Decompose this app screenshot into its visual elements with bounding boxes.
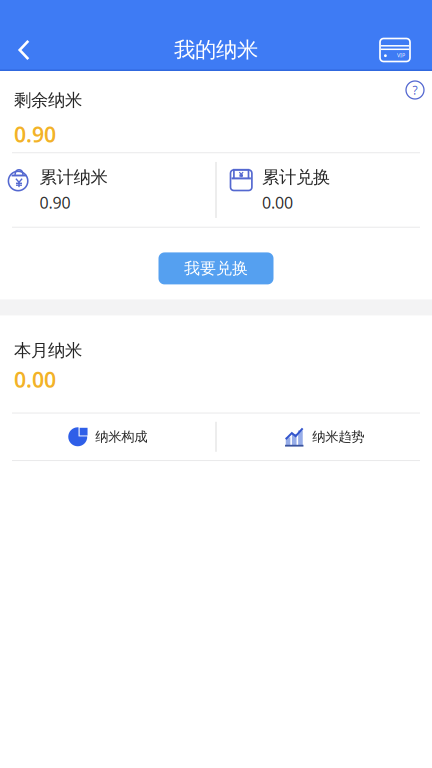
staticText: 纳米趋势 — [312, 429, 364, 445]
staticText: VIP — [397, 52, 405, 59]
staticText: 我的纳米 — [174, 37, 258, 63]
staticText: 累计纳米 — [39, 167, 107, 188]
staticText: 我要兑换 — [184, 259, 248, 278]
staticText: ? — [412, 82, 417, 98]
button[interactable]: 纳米趋势 — [216, 413, 432, 460]
button[interactable]: 纳米构成 — [0, 413, 215, 460]
staticText: 0.90 — [14, 120, 56, 148]
button[interactable]: 我要兑换 — [158, 252, 273, 284]
staticText: 本月纳米 — [14, 340, 82, 361]
staticText: 剩余纳米 — [14, 90, 82, 111]
staticText: 0.90 — [39, 192, 70, 213]
button[interactable]: 返回 — [0, 32, 46, 67]
staticText: 累计兑换 — [262, 167, 330, 188]
staticText: 纳米构成 — [95, 429, 147, 445]
staticText: 0.00 — [14, 365, 56, 393]
button[interactable]: 我的会员卡 — [364, 32, 432, 67]
button[interactable]: 帮助 — [406, 81, 424, 99]
staticText: 0.00 — [262, 192, 293, 213]
